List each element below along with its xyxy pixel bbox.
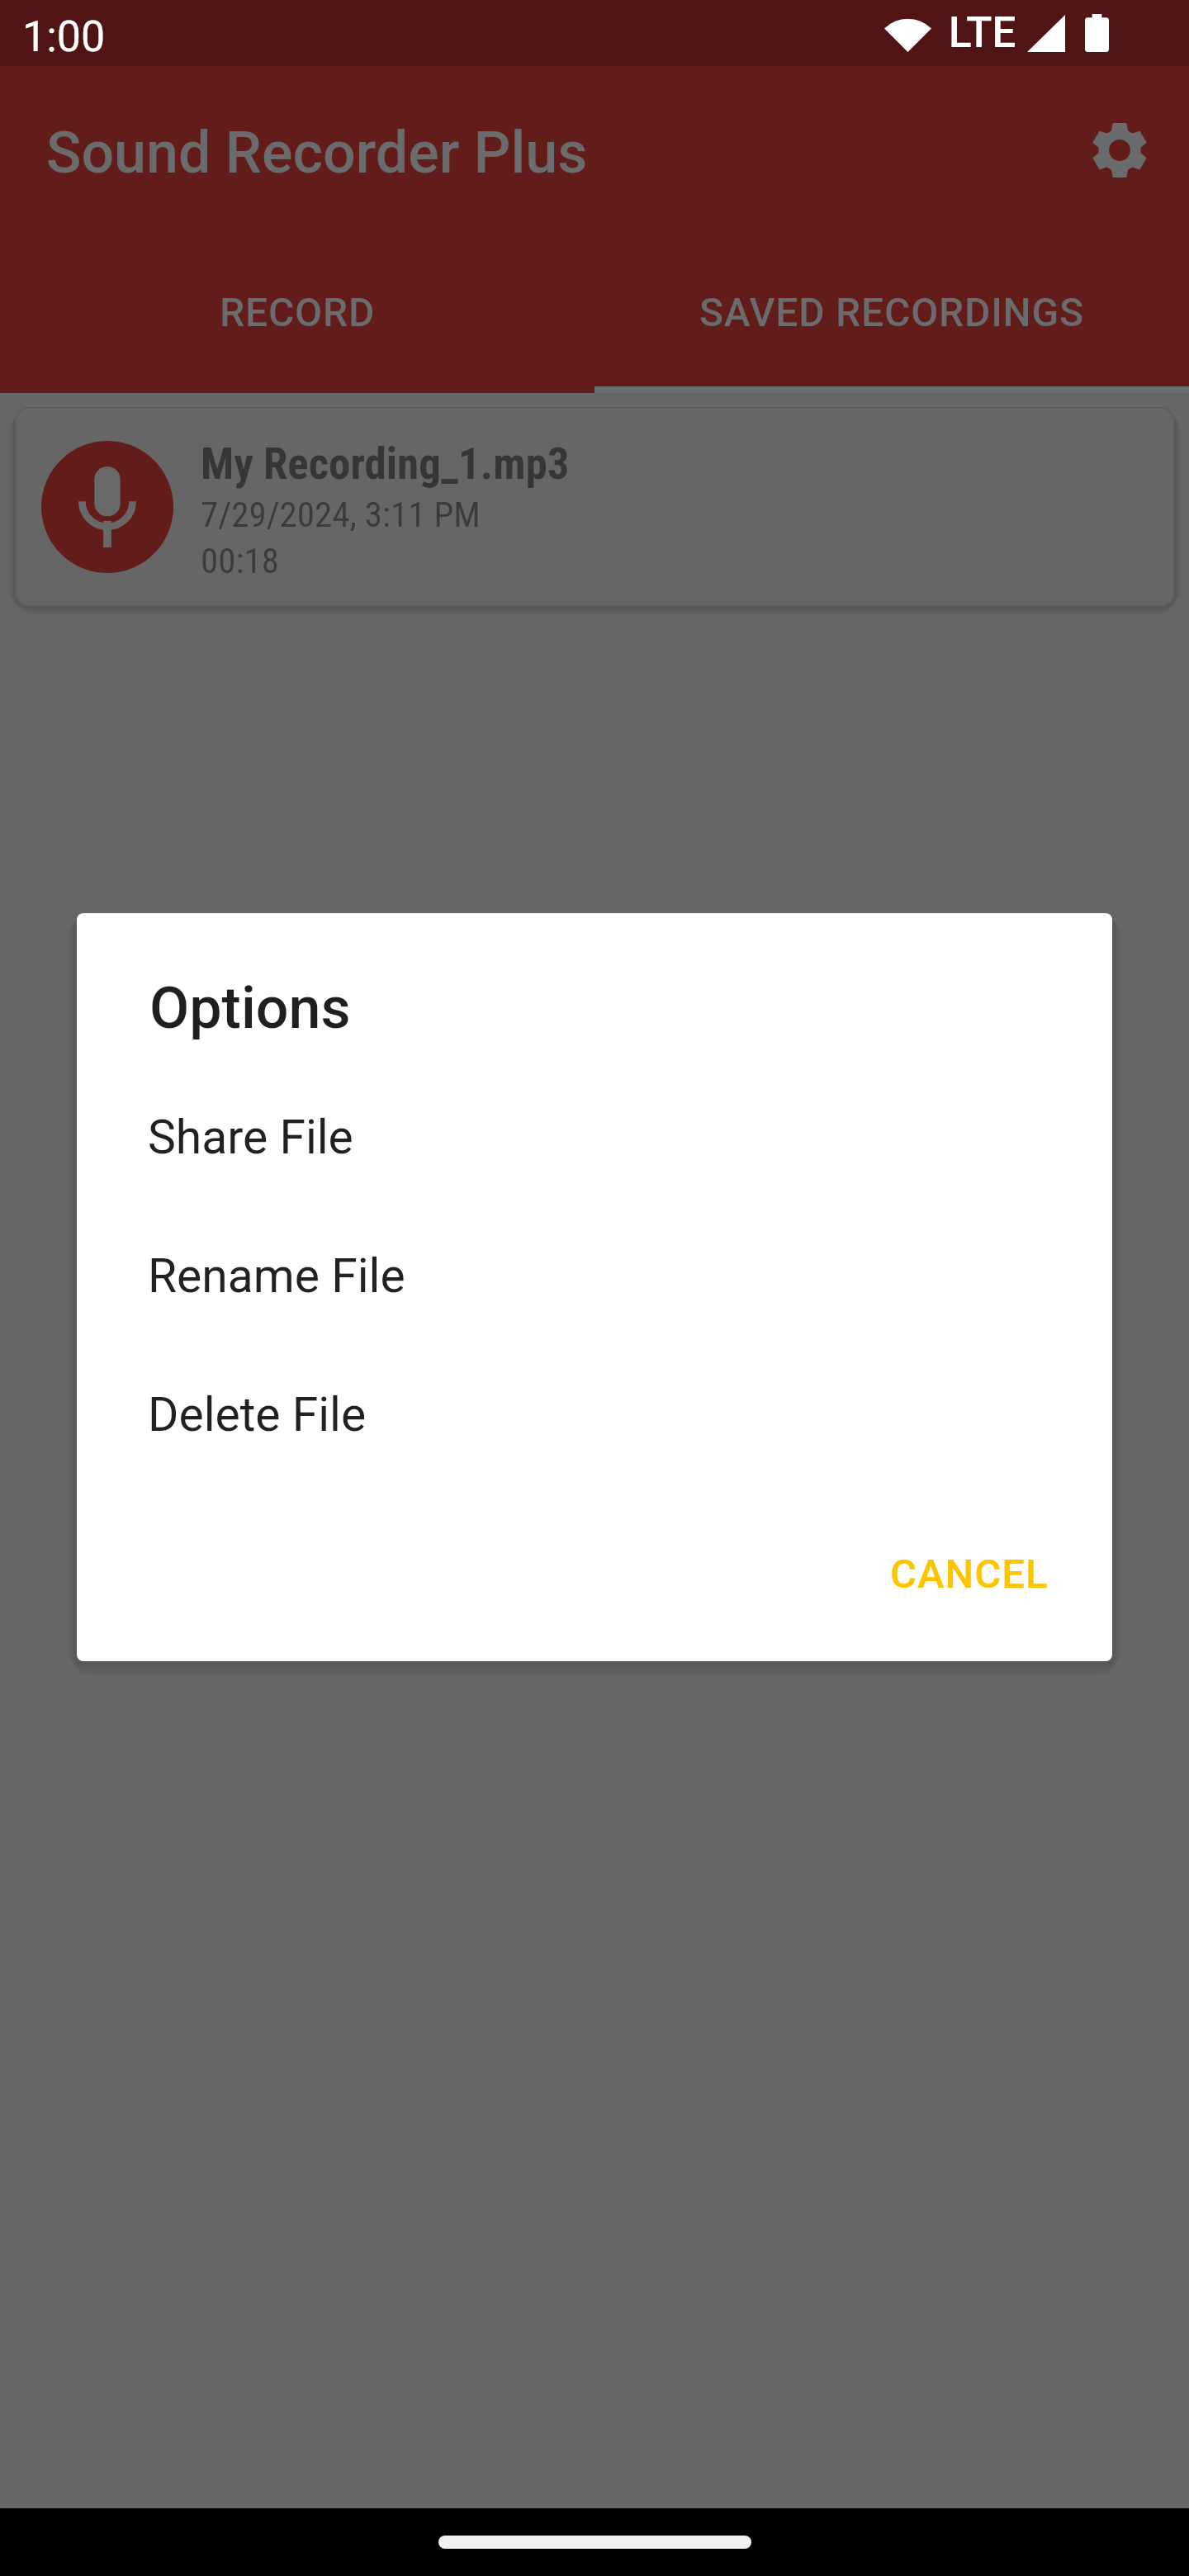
staticText: Delete File <box>148 1387 367 1442</box>
staticText: CANCEL <box>890 1551 1049 1598</box>
button[interactable]: CANCEL <box>860 1525 1079 1622</box>
staticText: SAVED RECORDINGS <box>699 289 1084 335</box>
staticText: 7/29/2024, 3:11 PM <box>201 494 481 535</box>
staticText: LTE <box>949 8 1016 58</box>
button[interactable]: SAVED RECORDINGS <box>594 256 1189 393</box>
button[interactable]: Rename File <box>77 1206 1112 1345</box>
staticText: Sound Recorder Plus <box>46 119 588 187</box>
staticText: My Recording_1.mp3 <box>201 438 570 490</box>
staticText: RECORD <box>220 289 376 335</box>
button[interactable]: Share File <box>77 1068 1112 1206</box>
button[interactable]: RECORD <box>0 256 594 393</box>
staticText: Options <box>149 974 351 1042</box>
button[interactable]: Settings <box>1066 97 1173 204</box>
staticText: Rename File <box>148 1248 405 1304</box>
button[interactable]: My Recording_1.mp3 <box>15 407 1175 606</box>
staticText: Share File <box>148 1110 353 1165</box>
button[interactable]: Delete File <box>77 1345 1112 1484</box>
staticText: 1:00 <box>22 12 106 62</box>
staticText: 00:18 <box>201 540 279 581</box>
